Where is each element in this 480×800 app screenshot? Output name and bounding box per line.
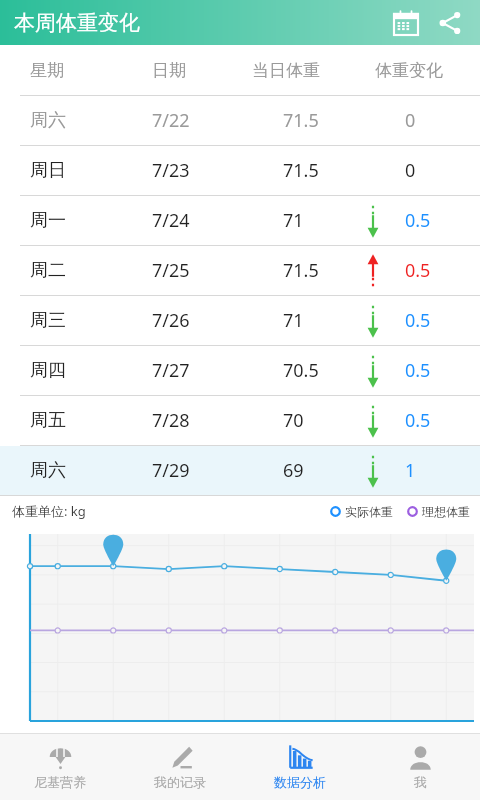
staticText: 71 <box>283 208 304 233</box>
staticText: 70.5 <box>283 358 319 383</box>
staticText: 当日体重 <box>252 60 320 81</box>
staticText: 1 <box>405 458 416 483</box>
staticText: 70 <box>283 408 304 433</box>
staticText: 7/26 <box>152 308 190 333</box>
staticText: 实际体重 <box>345 504 393 519</box>
staticText: 7/23 <box>152 158 190 183</box>
button[interactable]: 周日 <box>0 146 480 195</box>
button[interactable]: 我 <box>360 733 480 800</box>
button[interactable]: Calendar <box>384 1 428 45</box>
staticText: 0.5 <box>405 208 431 233</box>
staticText: 0.5 <box>405 408 431 433</box>
staticText: 69 <box>283 458 304 483</box>
staticText: 0.5 <box>405 358 431 383</box>
staticText: 我的记录 <box>154 774 206 790</box>
staticText: 7/22 <box>152 108 190 133</box>
staticText: 0.5 <box>405 308 431 333</box>
button[interactable]: 周一 <box>0 196 480 245</box>
staticText: 7/27 <box>152 358 190 383</box>
button[interactable]: 周六 <box>0 96 480 145</box>
staticText: 周五 <box>30 409 66 432</box>
staticText: 7/29 <box>152 458 190 483</box>
staticText: 7/25 <box>152 258 190 283</box>
staticText: 周日 <box>30 159 66 182</box>
staticText: 0.5 <box>405 258 431 283</box>
staticText: 我 <box>414 774 427 790</box>
button[interactable]: 周五 <box>0 396 480 445</box>
staticText: 71.5 <box>283 258 319 283</box>
staticText: 本周体重变化 <box>14 10 140 36</box>
button[interactable]: 周三 <box>0 296 480 345</box>
button[interactable]: 尼基营养 <box>0 733 120 800</box>
button[interactable]: Share <box>428 1 472 45</box>
staticText: 0 <box>405 158 416 183</box>
button[interactable]: 周六 <box>0 446 480 495</box>
staticText: 体重单位: kg <box>12 502 86 520</box>
staticText: 71 <box>283 308 304 333</box>
staticText: 周二 <box>30 259 66 282</box>
staticText: 周三 <box>30 309 66 332</box>
staticText: 星期 <box>30 60 64 81</box>
staticText: 理想体重 <box>422 504 470 519</box>
staticText: 周六 <box>30 459 66 482</box>
staticText: 日期 <box>152 60 186 81</box>
staticText: 7/24 <box>152 208 190 233</box>
staticText: 体重变化 <box>375 60 443 81</box>
staticText: 尼基营养 <box>34 774 86 790</box>
staticText: 数据分析 <box>274 774 326 790</box>
staticText: 7/28 <box>152 408 190 433</box>
staticText: 周六 <box>30 109 66 132</box>
button[interactable]: 周二 <box>0 246 480 295</box>
staticText: 周四 <box>30 359 66 382</box>
button[interactable]: 周四 <box>0 346 480 395</box>
staticText: 0 <box>405 108 416 133</box>
staticText: 周一 <box>30 209 66 232</box>
staticText: 71.5 <box>283 108 319 133</box>
button[interactable]: 数据分析 <box>240 733 360 800</box>
button[interactable]: 我的记录 <box>120 733 240 800</box>
staticText: 71.5 <box>283 158 319 183</box>
